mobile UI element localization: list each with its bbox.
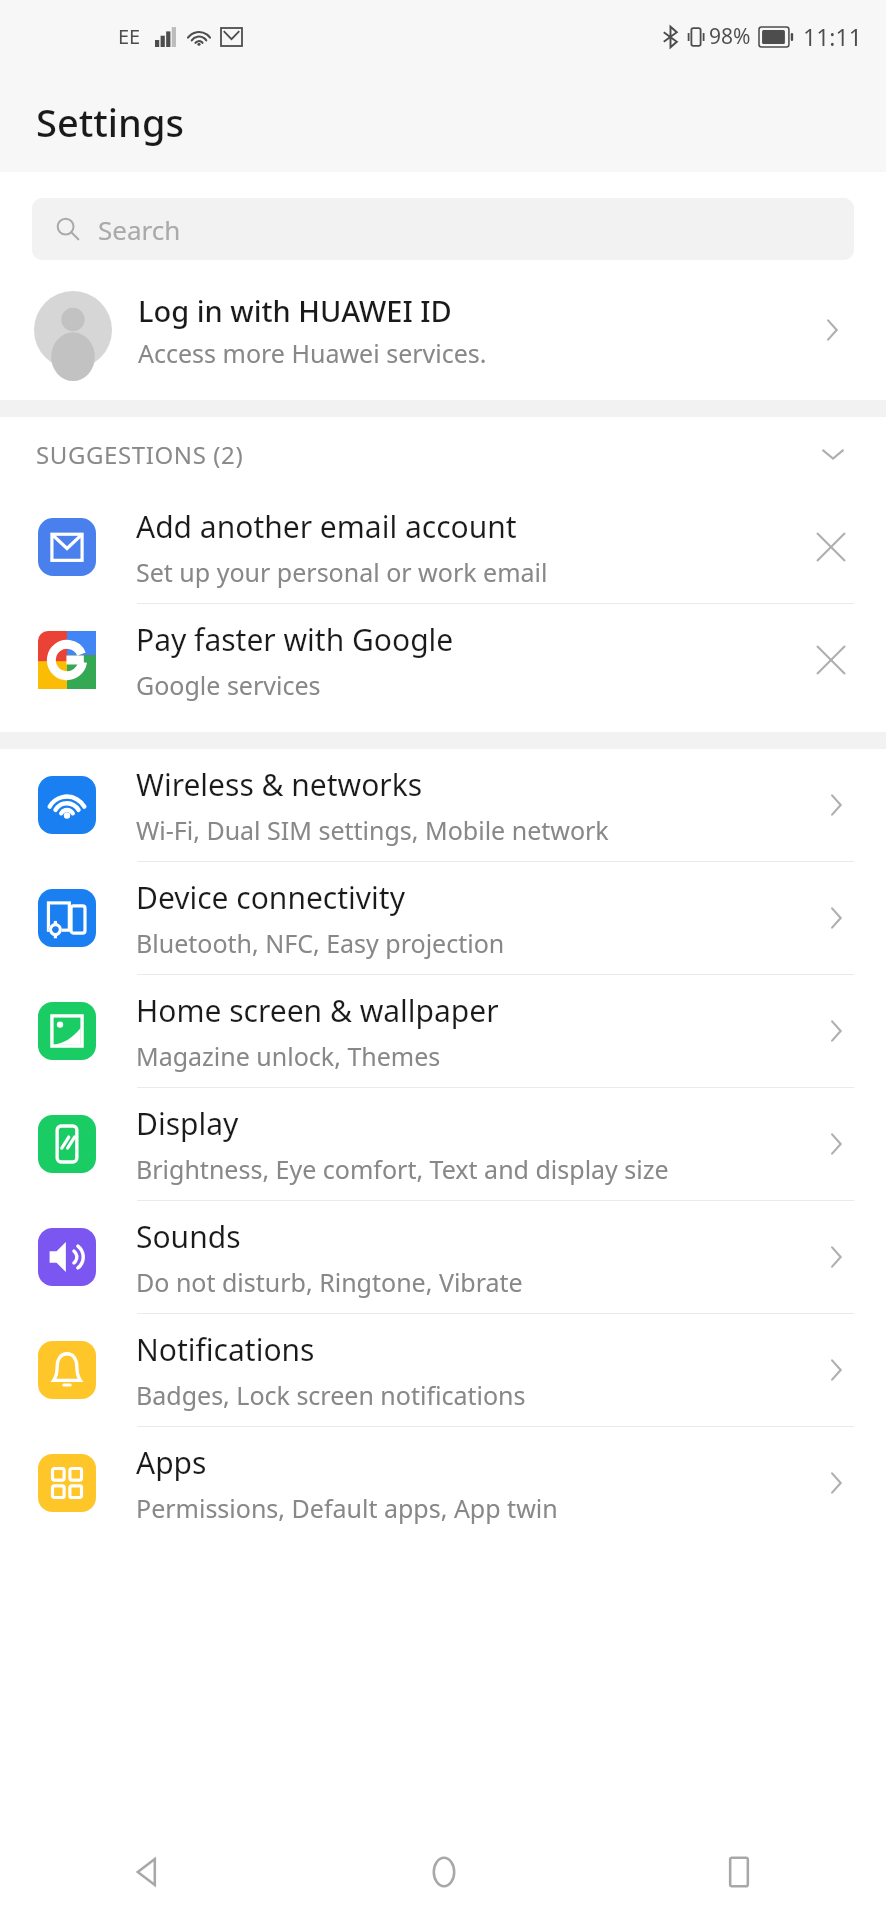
button[interactable]: Wireless & networks [0, 749, 886, 861]
staticText: 98% [709, 22, 751, 51]
staticText: Device connectivity [136, 877, 405, 918]
button[interactable]: Device connectivity [0, 862, 886, 974]
staticText: Log in with HUAWEI ID [138, 291, 452, 330]
button[interactable]: Dismiss Add another email account [806, 522, 856, 572]
staticText: Wi-Fi, Dual SIM settings, Mobile network [136, 813, 609, 847]
staticText: Do not disturb, Ringtone, Vibrate [136, 1265, 523, 1299]
other: Collapse suggestions [816, 437, 850, 471]
staticText: Set up your personal or work email [136, 555, 548, 589]
button[interactable]: Dismiss Pay faster with Google [806, 635, 856, 685]
staticText: Badges, Lock screen notifications [136, 1378, 526, 1412]
button[interactable]: Search [32, 198, 854, 260]
staticText: Pay faster with Google [136, 619, 454, 660]
staticText: Display [136, 1103, 239, 1144]
button[interactable]: Back [0, 1824, 296, 1920]
button[interactable]: Pay faster with Google [0, 604, 886, 716]
button[interactable]: Display [0, 1088, 886, 1200]
staticText: Access more Huawei services. [138, 336, 487, 370]
staticText: Apps [136, 1442, 207, 1483]
staticText: Add another email account [136, 506, 517, 547]
button[interactable]: Home screen & wallpaper [0, 975, 886, 1087]
staticText: Home screen & wallpaper [136, 990, 499, 1031]
staticText: Magazine unlock, Themes [136, 1039, 441, 1073]
staticText: EE [118, 23, 141, 50]
staticText: Wireless & networks [136, 764, 423, 805]
staticText: Bluetooth, NFC, Easy projection [136, 926, 505, 960]
button[interactable]: SUGGESTIONS (2) [0, 417, 886, 491]
staticText: Permissions, Default apps, App twin [136, 1491, 558, 1525]
staticText: Notifications [136, 1329, 315, 1370]
staticText: 11:11 [803, 21, 862, 52]
button[interactable]: Add another email account [0, 491, 886, 603]
button[interactable]: Log in with HUAWEI ID [0, 282, 886, 378]
staticText: SUGGESTIONS (2) [36, 438, 816, 471]
button[interactable]: Notifications [0, 1314, 886, 1426]
staticText: Settings [36, 96, 184, 148]
staticText: Google services [136, 668, 321, 702]
staticText: Brightness, Eye comfort, Text and displa… [136, 1152, 669, 1186]
staticText: Sounds [136, 1216, 241, 1257]
button[interactable]: Home [296, 1824, 591, 1920]
staticText: Search [98, 212, 181, 247]
button[interactable]: Apps [0, 1427, 886, 1539]
button[interactable]: Recent apps [591, 1824, 886, 1920]
button[interactable]: Sounds [0, 1201, 886, 1313]
